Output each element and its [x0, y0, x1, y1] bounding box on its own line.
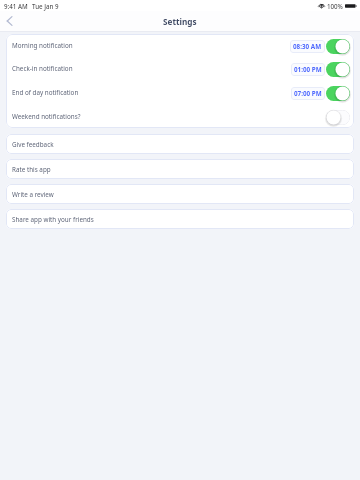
button[interactable]: Toggle on — [326, 62, 350, 77]
staticText: 9:41 AM — [4, 2, 28, 10]
button[interactable]: 07:00 PM — [291, 87, 325, 100]
staticText: Morning notification — [12, 41, 73, 50]
staticText: Weekend notifications? — [12, 112, 81, 121]
staticText: End of day notification — [12, 88, 79, 97]
button[interactable]: Back — [1, 13, 17, 29]
staticText: Rate this app — [12, 165, 51, 174]
button[interactable]: Rate this app — [6, 159, 354, 179]
button[interactable]: Give feedback — [6, 134, 354, 154]
staticText: Tue Jan 9 — [32, 2, 59, 10]
button[interactable]: End of day notification — [6, 80, 354, 104]
staticText: Settings — [163, 16, 197, 27]
button[interactable]: Share app with your friends — [6, 209, 354, 229]
button[interactable]: 08:30 AM — [290, 40, 325, 53]
button[interactable]: Weekend notifications? — [6, 104, 354, 128]
button[interactable]: Write a review — [6, 184, 354, 204]
button[interactable]: 01:00 PM — [291, 63, 325, 76]
staticText: 01:00 PM — [294, 65, 322, 74]
button[interactable]: Toggle on — [326, 86, 350, 101]
staticText: Give feedback — [12, 140, 54, 149]
staticText: Check-in notification — [12, 64, 73, 73]
staticText: Share app with your friends — [12, 215, 94, 224]
button[interactable]: Toggle on — [326, 39, 350, 54]
staticText: 07:00 PM — [294, 89, 322, 98]
button[interactable]: Toggle off — [326, 110, 350, 125]
staticText: 08:30 AM — [293, 42, 322, 51]
button[interactable]: Morning notification — [6, 34, 354, 57]
staticText: Write a review — [12, 190, 54, 199]
staticText: 100% — [327, 2, 343, 10]
button[interactable]: Check-in notification — [6, 57, 354, 80]
